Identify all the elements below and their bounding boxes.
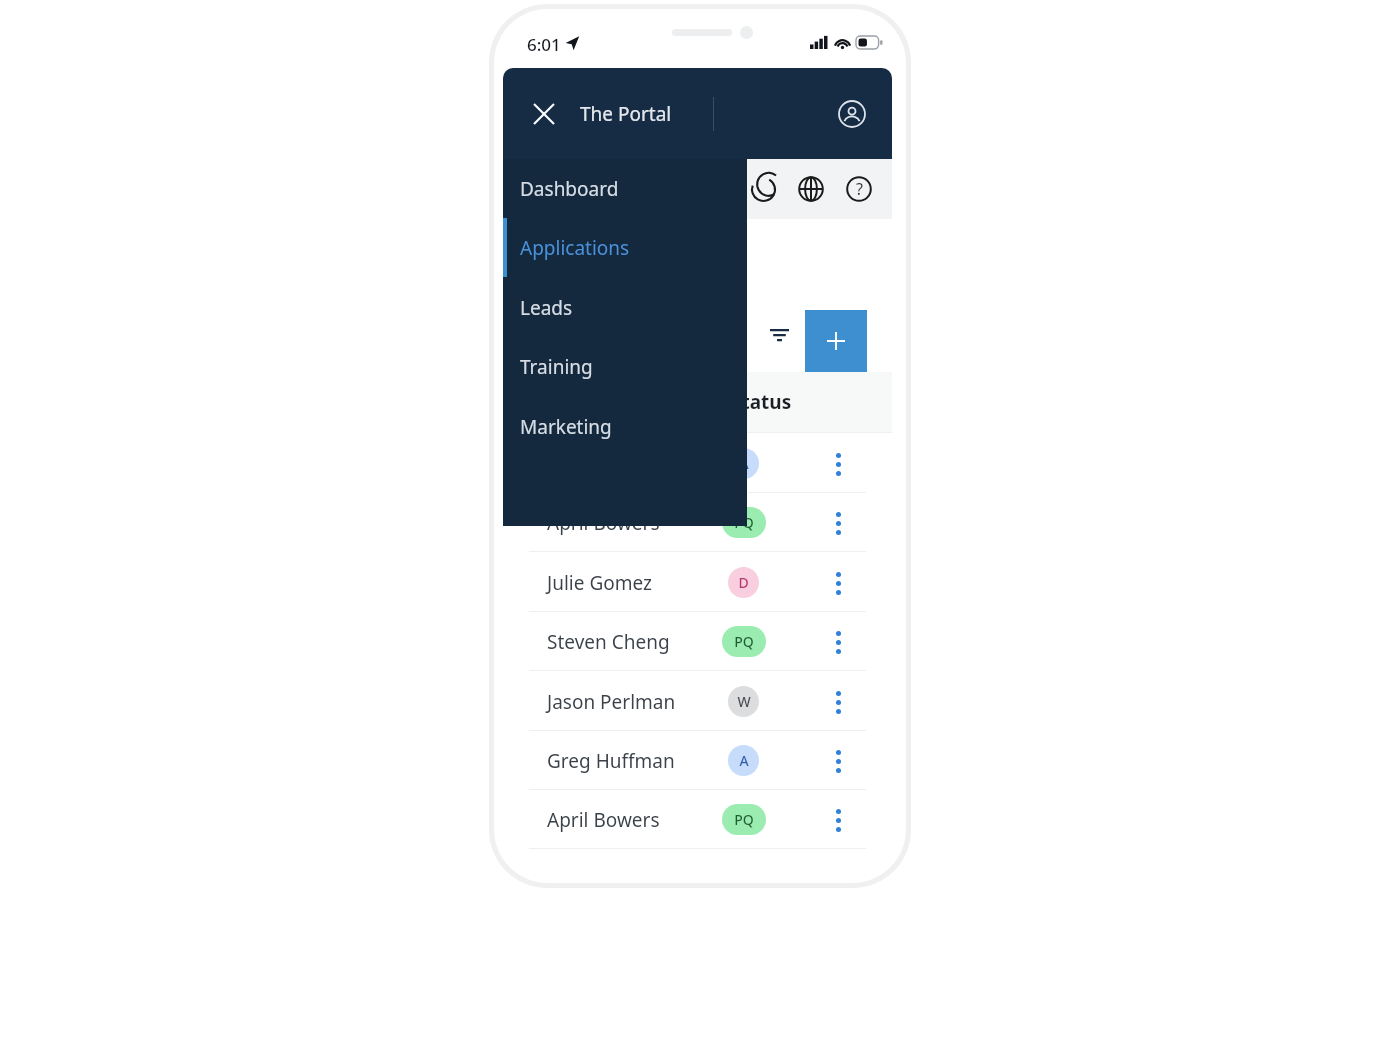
button[interactable]: Greg Huffman — [503, 731, 892, 790]
staticText: Greg Huffman — [547, 748, 675, 774]
button[interactable]: April Bowers — [503, 493, 892, 552]
button[interactable]: Add — [805, 310, 867, 372]
staticText: Applications — [520, 235, 630, 261]
staticText: PQ — [734, 810, 754, 829]
button[interactable]: Leads — [503, 278, 747, 337]
button[interactable]: More options — [815, 679, 861, 725]
button[interactable]: Marketing — [503, 397, 747, 456]
staticText: PQ — [734, 632, 754, 651]
staticText: Leads — [520, 295, 573, 321]
button[interactable]: Greg Huffman — [503, 434, 892, 493]
staticText: April Bowers — [547, 807, 660, 833]
button[interactable]: More options — [815, 560, 861, 606]
button[interactable]: More options — [815, 738, 861, 784]
staticText: PQ — [734, 513, 754, 532]
staticText: Training — [520, 354, 593, 380]
staticText: D — [738, 573, 749, 592]
staticText: Steven Cheng — [547, 629, 670, 655]
staticText: April Bowers — [547, 510, 660, 536]
button[interactable]: Steven Cheng — [503, 612, 892, 671]
staticText: A — [739, 454, 749, 473]
button[interactable]: More options — [815, 797, 861, 843]
staticText: W — [737, 692, 751, 711]
button[interactable]: Applications — [503, 218, 747, 277]
staticText: ? — [856, 178, 863, 200]
button[interactable]: More options — [815, 441, 861, 487]
button[interactable]: More options — [815, 619, 861, 665]
staticText: The Portal — [580, 101, 672, 127]
button[interactable]: Close — [523, 93, 565, 135]
button[interactable]: Julie Gomez — [503, 553, 892, 612]
button[interactable]: Help — [835, 165, 883, 213]
button[interactable]: Dark mode — [739, 165, 787, 213]
button[interactable]: Language — [787, 165, 835, 213]
button[interactable]: Jason Perlman — [503, 672, 892, 731]
staticText: Status — [731, 389, 792, 415]
staticText: Marketing — [520, 414, 612, 440]
button[interactable]: April Bowers — [503, 790, 892, 849]
button[interactable]: Filter — [755, 311, 803, 359]
staticText: Dashboard — [520, 176, 619, 202]
button[interactable]: Account — [830, 92, 874, 136]
button[interactable]: Training — [503, 337, 747, 396]
button[interactable]: Dashboard — [503, 159, 747, 218]
staticText: 6:01 — [527, 33, 561, 56]
button[interactable]: More options — [815, 500, 861, 546]
staticText: A — [739, 751, 749, 770]
staticText: Jason Perlman — [547, 689, 676, 715]
staticText: Julie Gomez — [547, 570, 652, 596]
